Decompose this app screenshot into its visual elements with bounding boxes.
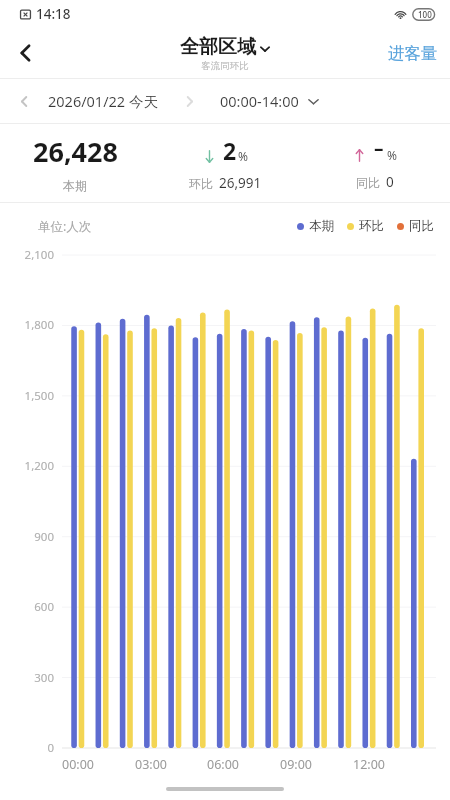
- staticText: 环比: [189, 176, 213, 191]
- staticText: 09:00: [280, 756, 312, 773]
- staticText: 300: [34, 670, 54, 686]
- staticText: 14:18: [36, 5, 71, 23]
- staticText: 12:00: [353, 756, 385, 773]
- button[interactable]: 同比: [397, 218, 434, 234]
- staticText: 同比: [409, 218, 434, 234]
- button[interactable]: Next day: [158, 79, 220, 123]
- staticText: 1,800: [24, 317, 54, 333]
- staticText: 1,200: [24, 458, 54, 474]
- staticText: 环比: [359, 218, 384, 234]
- staticText: 2: [223, 135, 237, 166]
- staticText: 本期: [309, 218, 334, 234]
- staticText: 同比: [356, 175, 380, 190]
- staticText: %: [238, 148, 248, 164]
- staticText: 2026/01/22 今天: [48, 91, 158, 111]
- button[interactable]: –: [300, 124, 450, 202]
- staticText: 06:00: [207, 756, 239, 773]
- button[interactable]: Previous day: [0, 79, 48, 123]
- staticText: 客流同环比: [201, 60, 249, 72]
- staticText: 26,428: [33, 133, 118, 170]
- button[interactable]: 本期: [297, 218, 334, 234]
- button[interactable]: 2: [150, 124, 300, 202]
- button[interactable]: 26,428: [0, 124, 150, 202]
- staticText: 26,991: [219, 174, 262, 192]
- staticText: 00:00-14:00: [220, 91, 299, 111]
- staticText: 进客量: [388, 43, 438, 64]
- staticText: 0: [47, 740, 54, 756]
- button[interactable]: 环比: [347, 218, 384, 234]
- staticText: 00:00: [62, 756, 94, 773]
- staticText: 1,500: [24, 388, 54, 404]
- staticText: 900: [34, 529, 54, 545]
- button[interactable]: 全部区域: [180, 35, 270, 72]
- staticText: 600: [34, 599, 54, 615]
- staticText: 100: [418, 9, 432, 20]
- button[interactable]: Back: [4, 31, 48, 75]
- staticText: 0: [386, 173, 394, 191]
- staticText: 2,100: [24, 247, 54, 263]
- staticText: 全部区域: [180, 35, 256, 59]
- staticText: 单位:人次: [38, 218, 92, 235]
- button[interactable]: 00:00-14:00: [220, 79, 319, 123]
- staticText: 本期: [63, 178, 87, 193]
- staticText: %: [387, 147, 397, 163]
- button[interactable]: 进客量: [388, 31, 438, 75]
- staticText: 03:00: [135, 756, 167, 773]
- staticText: –: [374, 135, 384, 161]
